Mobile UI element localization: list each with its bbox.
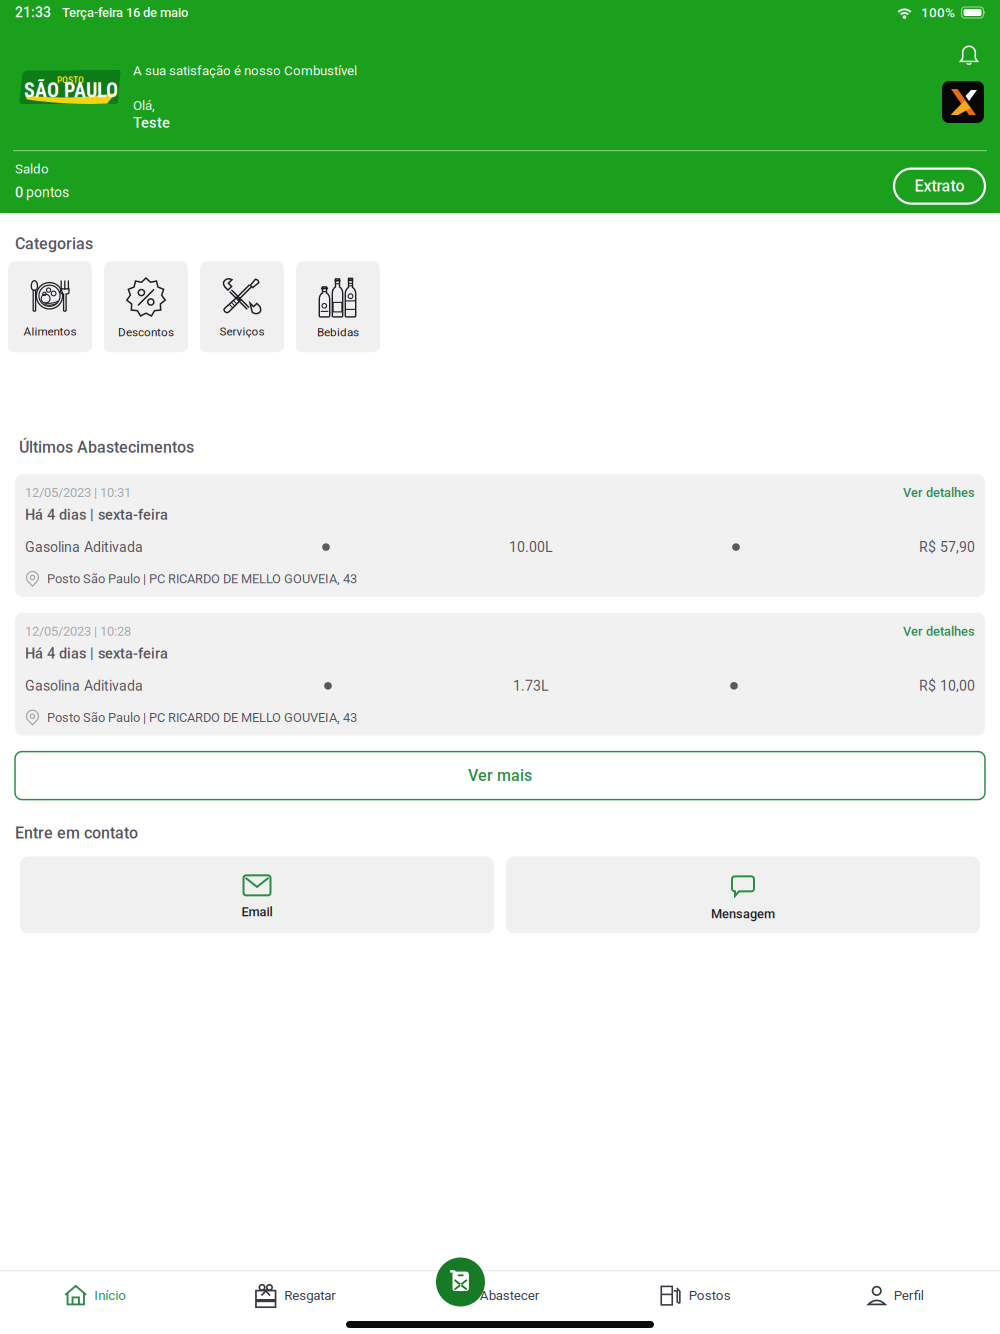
staticText: 10.00L <box>509 539 553 555</box>
button[interactable]: Resgatar <box>200 1271 400 1311</box>
staticText: Há 4 dias | sexta-feira <box>25 506 168 523</box>
staticText: Resgatar <box>284 1288 336 1303</box>
staticText: 12/05/2023 | 10:28 <box>25 624 131 639</box>
button[interactable]: Abastecer <box>436 1257 485 1306</box>
button[interactable]: Abastecer <box>400 1271 600 1311</box>
button[interactable]: Abrir parceiro <box>942 81 984 123</box>
button[interactable]: Extrato <box>894 169 985 204</box>
staticText: Saldo <box>15 161 49 177</box>
button[interactable]: 12/05/2023 | 10:28 <box>15 613 985 736</box>
button[interactable]: Descontos <box>104 261 188 352</box>
staticText: Olá, <box>133 98 155 113</box>
staticText: Posto São Paulo | PC RICARDO DE MELLO GO… <box>47 571 357 586</box>
button[interactable]: 12/05/2023 | 10:31 <box>15 474 985 597</box>
button[interactable]: Bebidas <box>296 261 380 352</box>
staticText: A sua satisfação é nosso Combustível <box>133 63 357 79</box>
staticText: Serviços <box>219 324 264 338</box>
staticText: 0 <box>15 184 23 201</box>
staticText: pontos <box>26 184 69 201</box>
staticText: R$ 10,00 <box>919 678 975 694</box>
staticText: Terça-feira 16 de maio <box>62 5 188 20</box>
staticText: Postos <box>689 1288 731 1303</box>
staticText: Email <box>241 904 272 919</box>
button[interactable]: Postos <box>600 1271 800 1311</box>
staticText: Categorias <box>15 234 93 253</box>
staticText: 1.73L <box>513 678 549 694</box>
staticText: Últimos Abastecimentos <box>19 438 194 457</box>
staticText: 100% <box>921 4 955 20</box>
staticText: POSTO <box>57 74 84 86</box>
button[interactable]: Alimentos <box>8 261 92 352</box>
button[interactable]: Perfil <box>800 1271 1000 1311</box>
staticText: Início <box>94 1288 126 1303</box>
staticText: Descontos <box>118 325 174 339</box>
button[interactable]: Início <box>0 1271 200 1311</box>
button[interactable]: Notificações <box>954 39 984 71</box>
button[interactable]: Ver mais <box>15 752 985 800</box>
staticText: Abastecer <box>480 1288 540 1303</box>
staticText: Teste <box>133 114 170 131</box>
staticText: Gasolina Aditivada <box>25 678 143 694</box>
staticText: 12/05/2023 | 10:31 <box>25 485 131 500</box>
button[interactable]: Email <box>20 856 494 933</box>
staticText: R$ 57,90 <box>919 539 975 555</box>
staticText: Ver detalhes <box>903 485 975 500</box>
staticText: Bebidas <box>317 325 359 339</box>
staticText: Ver mais <box>468 766 532 785</box>
staticText: Há 4 dias | sexta-feira <box>25 645 168 662</box>
staticText: Ver detalhes <box>903 624 975 639</box>
staticText: Alimentos <box>23 324 76 338</box>
staticText: Extrato <box>914 177 964 195</box>
staticText: SÃO PAULO <box>24 79 118 102</box>
button[interactable]: Mensagem <box>506 856 980 933</box>
staticText: Perfil <box>894 1288 924 1303</box>
staticText: Posto São Paulo | PC RICARDO DE MELLO GO… <box>47 710 357 725</box>
staticText: Mensagem <box>711 906 775 921</box>
staticText: Gasolina Aditivada <box>25 539 143 555</box>
button[interactable]: Serviços <box>200 261 284 352</box>
staticText: 21:33 <box>15 4 51 21</box>
staticText: Entre em contato <box>15 824 138 842</box>
